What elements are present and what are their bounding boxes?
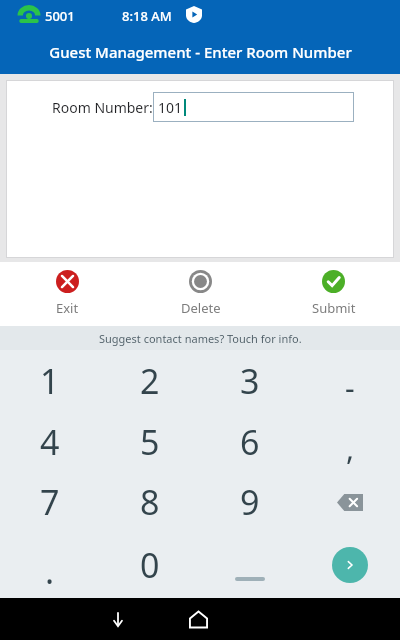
staticText: 1	[40, 358, 60, 404]
button[interactable]: ,	[300, 412, 400, 472]
staticText: 7	[40, 479, 60, 525]
button[interactable]: .	[0, 532, 100, 598]
staticText: 3	[240, 358, 260, 404]
staticText: 101	[158, 98, 183, 117]
button[interactable]: Submit	[267, 262, 400, 326]
staticText: 5001	[45, 7, 75, 25]
button[interactable]: 0	[100, 532, 200, 598]
button[interactable]: 4	[0, 412, 100, 472]
staticText: 9	[240, 479, 260, 525]
button[interactable]: Space	[200, 532, 300, 598]
button[interactable]: Suggest contact names? Touch for info.	[0, 326, 400, 350]
staticText: 8	[140, 479, 160, 525]
button[interactable]: Next	[300, 532, 400, 598]
staticText: 2	[140, 358, 160, 404]
staticText: Room Number:	[52, 98, 153, 117]
button[interactable]: 5	[100, 412, 200, 472]
button[interactable]: 1	[0, 350, 100, 412]
staticText: Submit	[312, 299, 356, 317]
button[interactable]: Hide keyboard	[97, 598, 139, 640]
button[interactable]: 3	[200, 350, 300, 412]
staticText: Guest Management - Enter Room Number	[49, 42, 352, 62]
button[interactable]: Backspace	[300, 472, 400, 532]
button[interactable]: 101	[153, 92, 354, 122]
staticText: 0	[140, 542, 160, 588]
staticText: 5	[140, 419, 160, 465]
button[interactable]: Exit	[0, 262, 134, 326]
button[interactable]: 9	[200, 472, 300, 532]
staticText: 6	[240, 419, 260, 465]
staticText: Exit	[56, 299, 79, 317]
button[interactable]: -	[300, 350, 400, 412]
button[interactable]: 8	[100, 472, 200, 532]
button[interactable]: Home	[177, 598, 219, 640]
button[interactable]: 2	[100, 350, 200, 412]
staticText: .	[45, 548, 55, 594]
staticText: ,	[346, 428, 355, 469]
button[interactable]: Delete	[134, 262, 267, 326]
staticText: 8:18 AM	[122, 7, 172, 25]
button[interactable]: 7	[0, 472, 100, 532]
staticText: Suggest contact names? Touch for info.	[99, 331, 302, 346]
button[interactable]: 6	[200, 412, 300, 472]
staticText: Delete	[181, 299, 221, 317]
staticText: -	[345, 367, 355, 408]
staticText: 4	[40, 419, 60, 465]
